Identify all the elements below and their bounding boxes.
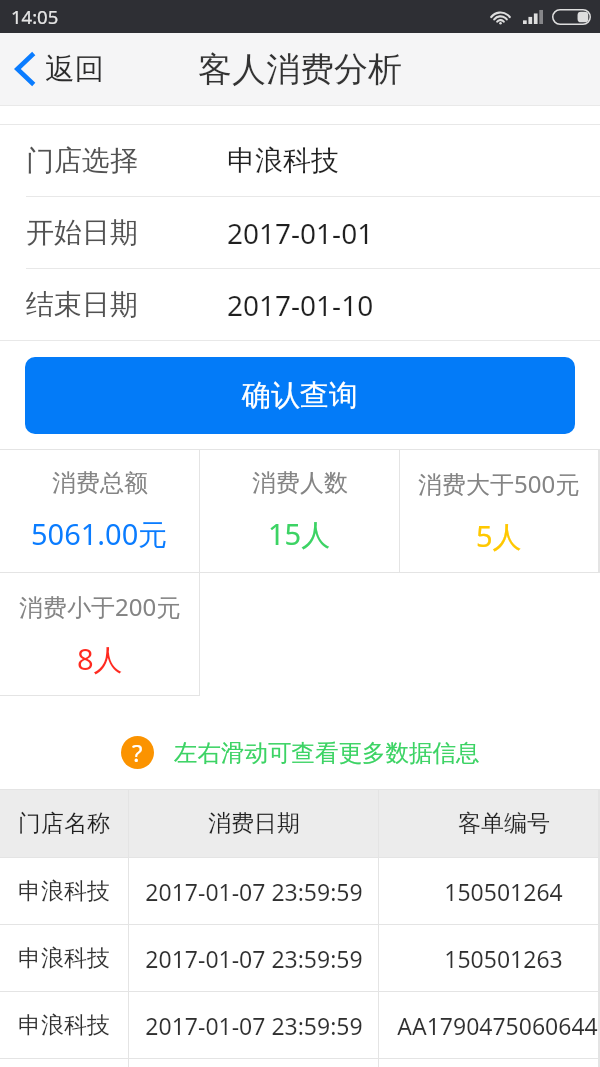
button[interactable]: 申浪科技 [0, 858, 600, 924]
staticText: 客人消费分析 [198, 48, 402, 91]
button[interactable]: 申浪科技 [0, 992, 600, 1058]
staticText: 消费大于500元 [418, 467, 580, 500]
button[interactable]: 消费人数 [200, 450, 399, 572]
staticText: 2017-01-07 23:59:59 [145, 876, 363, 907]
button[interactable]: Help [121, 736, 480, 769]
staticText: 消费总额 [52, 468, 148, 498]
staticText: 150501264 [444, 876, 563, 907]
staticText: AA1790475060644 [397, 1010, 598, 1041]
button[interactable]: 确认查询 [25, 357, 575, 434]
button[interactable]: 消费大于500元 [400, 450, 598, 572]
button[interactable]: 开始日期 [0, 197, 600, 268]
button[interactable]: 门店选择 [0, 125, 600, 196]
staticText: ? [132, 736, 143, 769]
button[interactable]: 结束日期 [0, 269, 600, 340]
staticText: 消费日期 [208, 809, 300, 838]
staticText: 申浪科技 [18, 1011, 110, 1040]
other: Back [14, 52, 35, 86]
staticText: 申浪科技 [18, 877, 110, 906]
staticText: 8人 [77, 639, 123, 679]
staticText: 150501263 [444, 943, 563, 974]
staticText: 14:05 [11, 4, 59, 29]
button[interactable]: 消费小于200元 [0, 573, 199, 695]
staticText: 2017-01-07 23:59:59 [145, 1010, 363, 1041]
button[interactable]: 申浪科技 [0, 925, 600, 991]
staticText: 2017-01-07 23:59:59 [145, 943, 363, 974]
staticText: 门店选择 [26, 143, 138, 178]
button[interactable]: Back [0, 33, 122, 105]
other: Help [121, 736, 154, 769]
staticText: 左右滑动可查看更多数据信息 [174, 738, 480, 768]
staticText: 消费人数 [252, 468, 348, 498]
staticText: 2017-01-10 [227, 286, 374, 324]
staticText: 申浪科技 [18, 944, 110, 973]
staticText: 确认查询 [242, 377, 358, 414]
staticText: 消费小于200元 [19, 590, 181, 623]
staticText: 返回 [45, 51, 104, 88]
staticText: 5人 [476, 516, 522, 556]
staticText: 5061.00元 [31, 514, 168, 554]
staticText: 申浪科技 [227, 143, 339, 178]
staticText: 门店名称 [18, 809, 110, 838]
staticText: 15人 [268, 514, 331, 554]
staticText: 结束日期 [26, 287, 138, 322]
staticText: 开始日期 [26, 215, 138, 250]
staticText: 2017-01-01 [227, 214, 374, 252]
button[interactable]: 消费总额 [0, 450, 199, 572]
staticText: 客单编号 [458, 809, 550, 838]
